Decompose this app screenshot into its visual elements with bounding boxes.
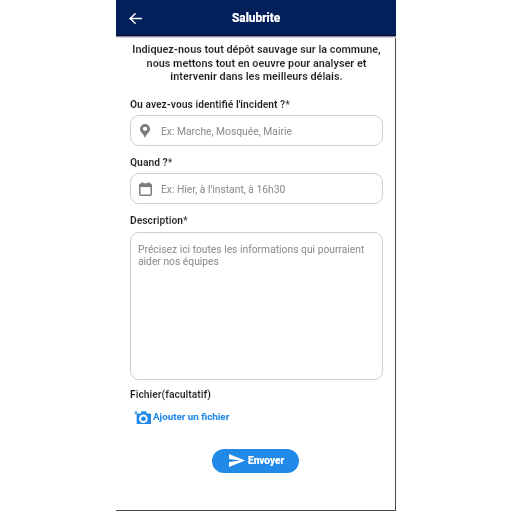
staticText: Ajouter un fichier <box>153 411 230 422</box>
staticText: Envoyer <box>248 455 285 467</box>
button[interactable]: Ajouter un fichier <box>134 408 230 424</box>
staticText: Description* <box>130 214 188 226</box>
staticText: Indiquez-nous tout dépôt sauvage sur la … <box>130 43 383 82</box>
staticText: Précisez ici toutes les informations qui… <box>138 243 370 267</box>
button[interactable]: Envoyer <box>212 449 299 473</box>
button[interactable]: Ex: Hier, à l'instant, à 16h30 <box>130 173 383 204</box>
staticText: Fichier(facultatif) <box>130 388 211 400</box>
staticText: Ex: Hier, à l'instant, à 16h30 <box>161 183 286 195</box>
button[interactable]: Ex: Marche, Mosquée, Mairie <box>130 115 383 146</box>
staticText: Quand ?* <box>130 156 173 168</box>
staticText: Ex: Marche, Mosquée, Mairie <box>161 125 292 137</box>
button[interactable]: Back <box>123 6 147 30</box>
staticText: Salubrite <box>232 11 281 25</box>
button[interactable]: Précisez ici toutes les informations qui… <box>130 232 383 380</box>
staticText: Ou avez-vous identifié l'incident ?* <box>130 98 290 110</box>
